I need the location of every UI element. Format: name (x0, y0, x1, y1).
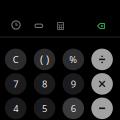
button[interactable]: Delete (92, 17, 110, 35)
button[interactable]: 8 (34, 73, 55, 95)
staticText: 7 (13, 78, 18, 90)
staticText: 6 (71, 102, 76, 114)
button[interactable]: History (6, 16, 26, 34)
staticText: ( ) (40, 52, 49, 66)
button[interactable]: Minus (91, 97, 113, 119)
staticText: 8 (42, 78, 47, 90)
staticText: 9 (71, 78, 76, 90)
button[interactable]: Multiply (91, 73, 113, 95)
button[interactable]: 7 (5, 73, 26, 95)
button[interactable]: C (5, 49, 26, 70)
button[interactable]: % (62, 49, 84, 70)
button[interactable]: 6 (62, 97, 84, 119)
button[interactable]: Divide (91, 49, 113, 70)
button[interactable]: 5 (34, 97, 55, 119)
button[interactable]: Keypad (50, 17, 70, 35)
button[interactable]: 9 (62, 73, 84, 95)
button[interactable]: Display mode (29, 17, 49, 35)
button[interactable]: 4 (5, 97, 26, 119)
staticText: C (13, 53, 19, 66)
button[interactable]: ( ) (34, 49, 55, 70)
staticText: 5 (42, 102, 47, 114)
staticText: % (69, 53, 77, 66)
staticText: 4 (13, 102, 18, 114)
